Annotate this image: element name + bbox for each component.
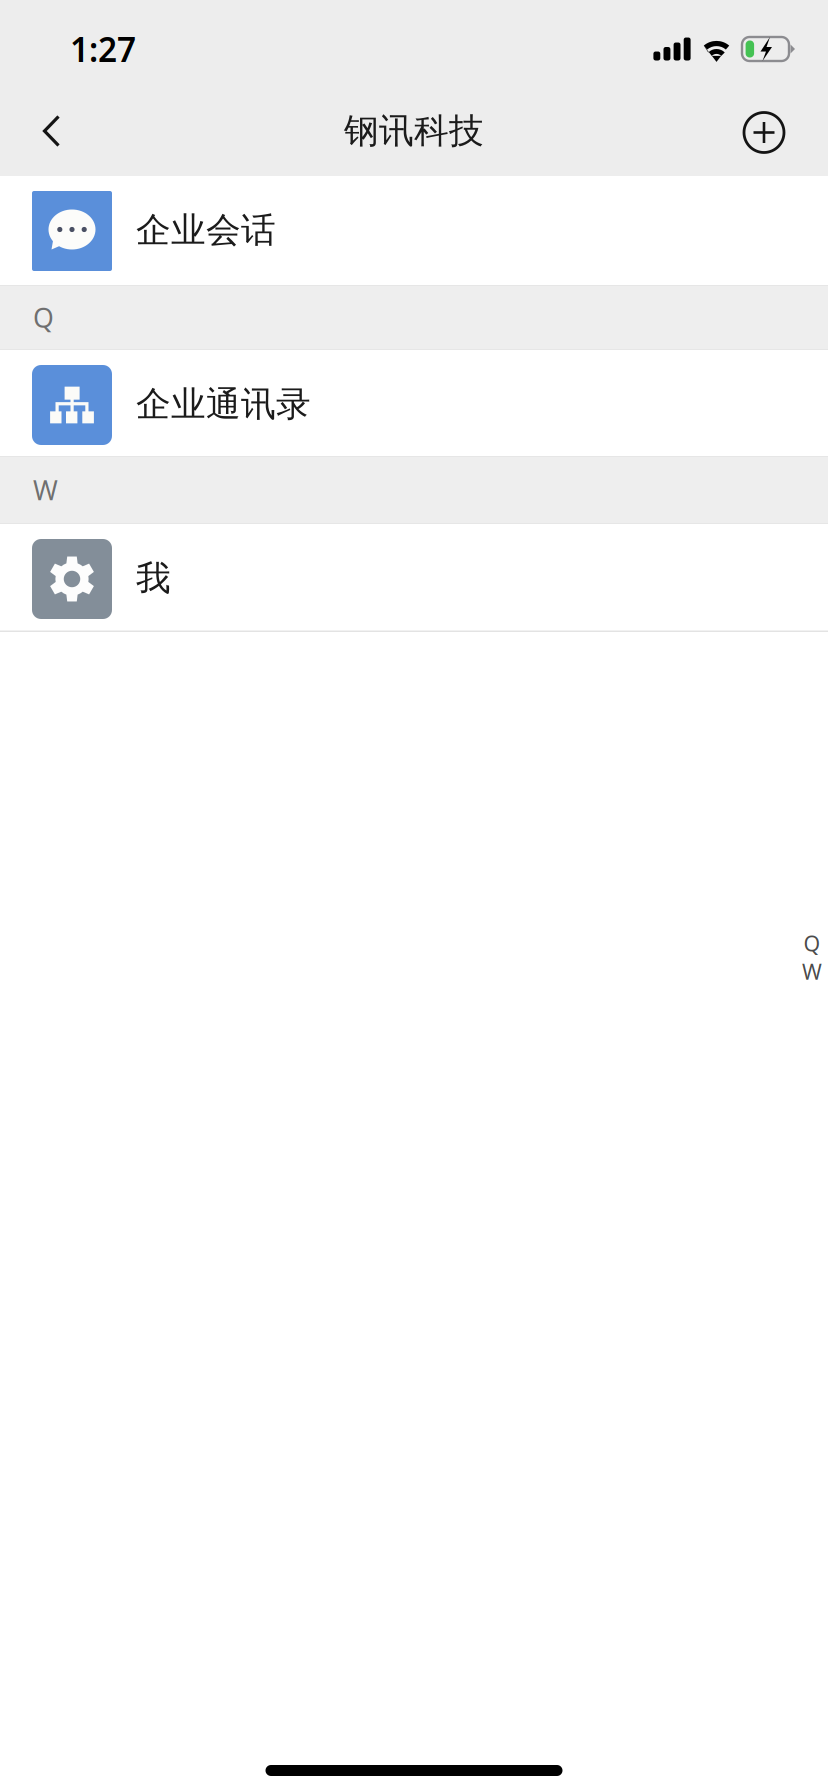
staticText: 企业会话 (136, 209, 276, 252)
staticText: 我 (136, 557, 171, 600)
button[interactable]: 我 (0, 524, 828, 632)
button[interactable]: 企业通讯录 (0, 350, 828, 456)
button[interactable]: 企业会话 (0, 176, 828, 285)
staticText: 1:27 (70, 27, 136, 71)
button[interactable]: Add (728, 92, 800, 176)
button[interactable]: Back (22, 92, 78, 176)
staticText: Q (803, 929, 820, 957)
button[interactable]: Section index (797, 929, 827, 986)
staticText: 钢讯科技 (344, 110, 484, 152)
staticText: 企业通讯录 (136, 383, 311, 426)
staticText: W (802, 957, 822, 986)
staticText: W (33, 472, 58, 508)
staticText: Q (33, 300, 54, 335)
